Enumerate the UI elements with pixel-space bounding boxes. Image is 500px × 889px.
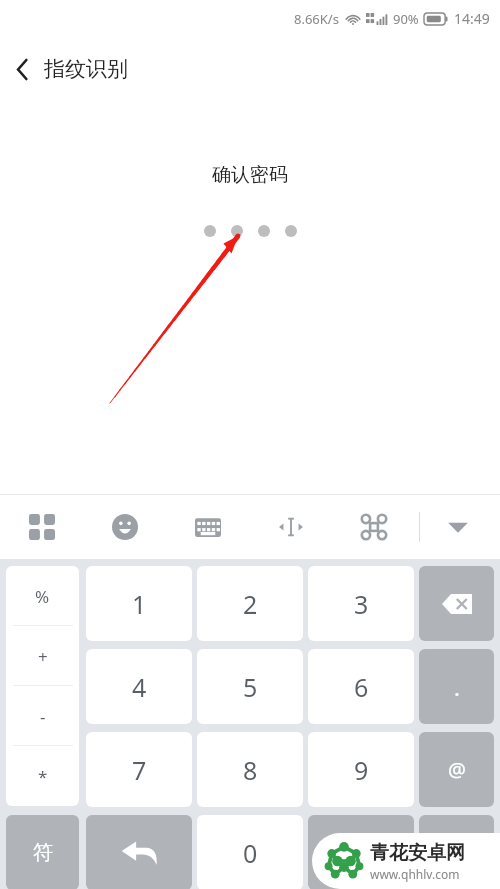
button[interactable]: 0: [197, 815, 303, 889]
staticText: 符: [33, 840, 53, 865]
button[interactable]: 符: [6, 815, 79, 889]
staticText: 90%: [393, 10, 419, 28]
button[interactable]: 8: [197, 732, 303, 807]
staticText: 0: [243, 836, 258, 870]
button[interactable]: @: [419, 732, 494, 807]
staticText: *: [38, 765, 48, 788]
button[interactable]: Keyboard: [182, 501, 234, 553]
button[interactable]: Hide keyboard: [432, 501, 484, 553]
staticText: 确认密码: [212, 163, 288, 187]
button[interactable]: Back: [0, 44, 44, 94]
button[interactable]: %: [6, 566, 79, 626]
staticText: 1: [132, 587, 147, 621]
button[interactable]: .: [419, 649, 494, 724]
staticText: @: [448, 756, 466, 783]
button[interactable]: 6: [308, 649, 414, 724]
button[interactable]: 9: [308, 732, 414, 807]
button[interactable]: 5: [197, 649, 303, 724]
button[interactable]: [308, 815, 414, 889]
button[interactable]: -: [6, 686, 79, 746]
staticText: 7: [132, 753, 147, 787]
staticText: 指纹识别: [44, 56, 128, 82]
button[interactable]: Backspace: [419, 566, 494, 641]
button[interactable]: 1: [86, 566, 192, 641]
staticText: 2: [243, 587, 258, 621]
button[interactable]: Move cursor: [265, 501, 317, 553]
staticText: .: [454, 672, 460, 702]
staticText: 9: [354, 753, 369, 787]
button[interactable]: 7: [86, 732, 192, 807]
button[interactable]: Keyboard layouts: [16, 501, 68, 553]
staticText: 8.66K/s: [294, 10, 339, 28]
button[interactable]: 3: [308, 566, 414, 641]
staticText: %: [35, 585, 50, 608]
button[interactable]: Shortcuts: [348, 501, 400, 553]
staticText: 8: [243, 753, 258, 787]
button[interactable]: Enter: [86, 815, 192, 889]
staticText: www.qhhlv.com: [370, 866, 460, 882]
button[interactable]: +: [6, 626, 79, 686]
staticText: 4: [132, 670, 147, 704]
button[interactable]: 2: [197, 566, 303, 641]
staticText: 青花安卓网: [370, 841, 465, 865]
button[interactable]: 4: [86, 649, 192, 724]
staticText: 6: [354, 670, 369, 704]
button[interactable]: Emoji: [99, 501, 151, 553]
button[interactable]: *: [6, 746, 79, 806]
button[interactable]: [419, 815, 494, 889]
staticText: -: [40, 705, 46, 728]
staticText: 5: [243, 670, 258, 704]
staticText: 14:49: [454, 9, 490, 28]
staticText: 3: [354, 587, 369, 621]
staticText: +: [38, 645, 48, 668]
